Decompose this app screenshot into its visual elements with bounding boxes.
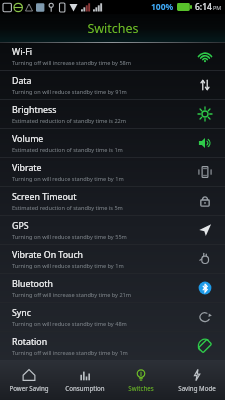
staticText: Brightness [12,104,57,116]
button[interactable]: Vibrate [0,158,225,186]
staticText: Volume [12,133,44,145]
staticText: Wi-Fi [12,46,33,58]
button[interactable]: Screen Timeout [0,187,225,215]
staticText: Estimated reduction of standby time is 5… [12,204,123,212]
staticText: Turning on will reduce standby time by 1… [12,262,124,270]
staticText: Turning on will reduce standby time by 5… [12,233,127,241]
staticText: 100% [151,1,174,13]
staticText: Data [12,75,32,87]
staticText: Vibrate On Touch [12,249,84,261]
button[interactable]: Saving Mode [169,360,225,400]
staticText: Turning off will increase standby time b… [12,291,132,299]
staticText: Power Saving [9,384,49,392]
staticText: 6:14 [195,1,212,13]
staticText: Switches [87,20,139,37]
staticText: Turning on will reduce standby time by 4… [12,320,127,328]
button[interactable]: Vibrate On Touch [0,245,225,273]
staticText: Saving Mode [178,384,216,392]
button[interactable]: Consumption [57,360,113,400]
staticText: Bluetooth [12,278,53,290]
staticText: GPS [12,220,29,232]
staticText: Turning off will increase standby time b… [12,59,132,67]
staticText: Turning off will increase standby time b… [12,349,128,357]
button[interactable]: Brightness [0,100,225,128]
staticText: PM [213,4,222,11]
staticText: Vibrate [12,162,42,174]
button[interactable]: Data [0,71,225,99]
staticText: Screen Timeout [12,191,77,203]
staticText: Turning on will reduce standby time by 9… [12,88,127,96]
staticText: Switches [128,384,154,392]
staticText: Estimated reduction of standby time is 2… [12,117,127,125]
staticText: Rotation [12,336,48,348]
button[interactable]: Bluetooth [0,274,225,302]
staticText: Estimated reduction of standby time is 1… [12,146,123,154]
button[interactable]: GPS [0,216,225,244]
staticText: Turning on will reduce standby time by 1… [12,175,124,183]
button[interactable]: Rotation [0,332,225,360]
staticText: Sync [12,307,31,319]
button[interactable]: Power Saving [0,360,57,400]
staticText: Consumption [65,384,105,392]
button[interactable]: Volume [0,129,225,157]
button[interactable]: Wi-Fi [0,43,225,70]
button[interactable]: Sync [0,303,225,331]
button[interactable]: Switches [113,360,169,400]
